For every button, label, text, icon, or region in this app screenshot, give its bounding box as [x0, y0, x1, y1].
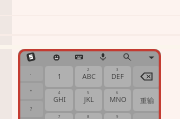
staticText: 4 [58, 90, 61, 95]
button[interactable] [133, 66, 160, 87]
button[interactable]: PQRS [45, 113, 73, 119]
button[interactable]: Voice input [92, 49, 114, 65]
staticText: JKL [84, 95, 94, 105]
staticText: ? [30, 106, 33, 113]
button[interactable]: ABC [75, 66, 102, 87]
button[interactable]: TUV [75, 113, 102, 119]
staticText: . [30, 70, 32, 77]
button[interactable]: 1 [45, 66, 73, 87]
staticText: 1 [57, 72, 62, 82]
button[interactable]: . [19, 66, 43, 81]
button[interactable]: Sogou input method [20, 49, 42, 65]
staticText: 8 [87, 114, 90, 119]
staticText: 7 [58, 114, 61, 119]
button[interactable] [133, 113, 160, 119]
button[interactable]: WXYZ [104, 113, 131, 119]
staticText: 3 [116, 67, 119, 72]
button[interactable]: JKL [75, 89, 102, 111]
button[interactable]: DEF [104, 66, 131, 87]
staticText: ABC [82, 72, 96, 82]
staticText: DEF [111, 72, 124, 82]
button[interactable]: GHI [45, 89, 73, 111]
button[interactable]: Emoji [45, 49, 67, 65]
button[interactable]: Hide keyboard [140, 49, 161, 65]
button[interactable]: MNO [104, 89, 131, 111]
staticText: • [30, 88, 32, 95]
button[interactable]: Search [116, 49, 138, 65]
staticText: 重输 [140, 96, 154, 105]
staticText: 6 [116, 90, 119, 95]
button[interactable]: ? [19, 101, 43, 117]
staticText: MNO [109, 95, 127, 105]
button[interactable]: • [19, 83, 43, 99]
button[interactable]: 重输 [133, 89, 160, 111]
staticText: 5 [87, 90, 90, 95]
staticText: 9 [116, 114, 119, 119]
staticText: 2 [87, 67, 90, 72]
staticText: GHI [53, 95, 66, 105]
button[interactable]: Keyboard layout [68, 49, 90, 65]
